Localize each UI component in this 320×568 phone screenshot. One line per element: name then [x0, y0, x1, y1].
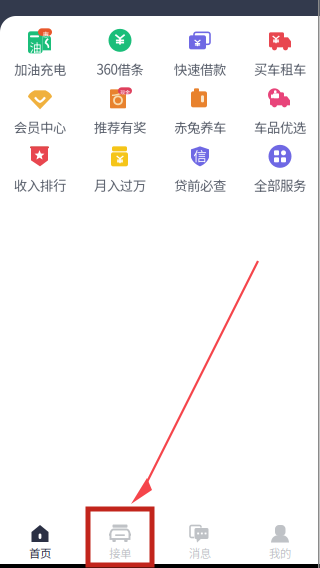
button[interactable]: 我的 [240, 514, 320, 564]
staticText: 全部服务 [254, 175, 306, 195]
staticText: 接单 [109, 544, 131, 561]
staticText: 会员中心 [14, 117, 66, 137]
staticText: 收入排行 [14, 175, 66, 195]
button[interactable]: 快速借款 [160, 24, 240, 82]
staticText: 信 [193, 146, 206, 165]
button[interactable]: 会员中心 [0, 82, 80, 140]
button[interactable]: 首页 [0, 514, 80, 564]
button[interactable]: 360借条 [80, 24, 160, 82]
staticText: 惠 [42, 30, 49, 39]
staticText: 加油充电 [14, 59, 66, 79]
staticText: 消息 [189, 544, 211, 561]
staticText: 360借条 [96, 59, 143, 79]
staticText: 快速借款 [174, 59, 226, 79]
button[interactable]: 现金 [80, 82, 160, 140]
staticText: 月入过万 [94, 175, 146, 195]
button[interactable]: 买车租车 [240, 24, 320, 82]
button[interactable]: 月入过万 [80, 140, 160, 198]
staticText: 买车租车 [254, 59, 306, 79]
button[interactable]: 赤兔养车 [160, 82, 240, 140]
button[interactable]: 信 [160, 140, 240, 198]
staticText: 贷前必查 [174, 175, 226, 195]
staticText: 推荐有奖 [94, 117, 146, 137]
staticText: 我的 [269, 544, 291, 561]
button[interactable]: 全部服务 [240, 140, 320, 198]
staticText: 油 [29, 38, 41, 56]
staticText: 车品优选 [254, 117, 306, 137]
button[interactable]: 接单 [80, 514, 160, 564]
staticText: 赤兔养车 [174, 117, 226, 137]
staticText: 首页 [29, 544, 51, 561]
staticText: 现金 [120, 88, 130, 96]
button[interactable]: 收入排行 [0, 140, 80, 198]
button[interactable]: 消息 [160, 514, 240, 564]
button[interactable]: 车品优选 [240, 82, 320, 140]
button[interactable]: 油 [0, 24, 80, 82]
